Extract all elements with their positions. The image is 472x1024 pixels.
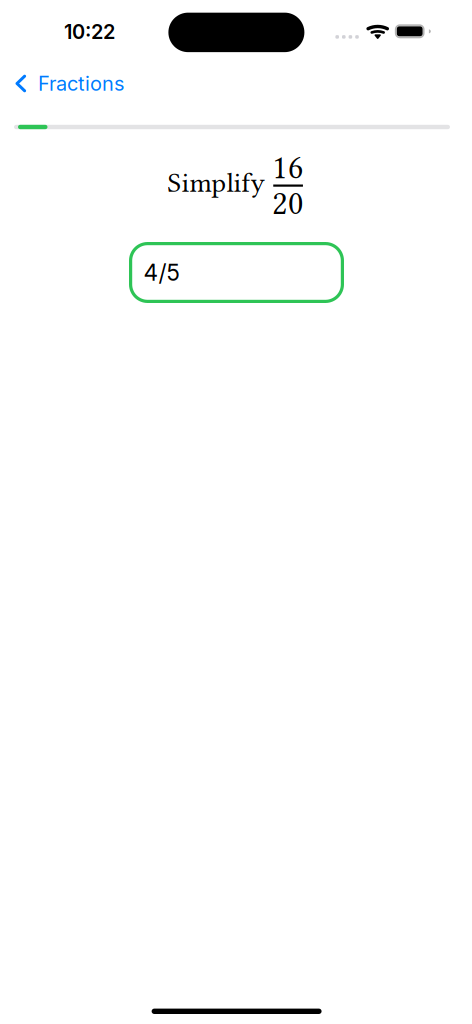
staticText: Simplify	[167, 167, 264, 198]
staticText: 20	[272, 184, 304, 222]
button[interactable]: Fractions	[0, 61, 160, 105]
staticText: Fractions	[38, 71, 124, 96]
staticText: 16	[272, 148, 304, 186]
staticText: 10:22	[64, 20, 115, 44]
staticText: 4/5	[143, 259, 179, 286]
button[interactable]: 4/5	[129, 242, 344, 303]
